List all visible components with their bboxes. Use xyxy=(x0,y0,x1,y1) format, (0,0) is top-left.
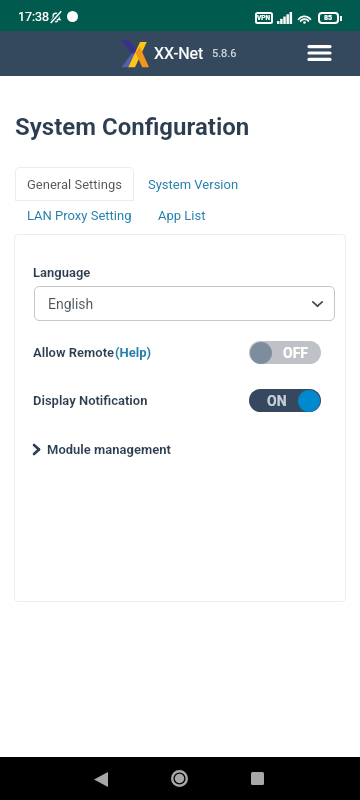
staticText: General Settings xyxy=(27,177,122,192)
staticText: Language xyxy=(33,265,91,280)
button[interactable]: Home xyxy=(157,757,202,800)
button[interactable]: Recent apps xyxy=(235,757,280,800)
button[interactable]: Module management xyxy=(33,438,171,460)
staticText: XX-Net xyxy=(154,44,204,63)
staticText: OFF xyxy=(283,345,309,361)
button[interactable]: System Version xyxy=(134,167,253,201)
button[interactable]: Allow remote off xyxy=(249,341,321,364)
staticText: 5.8.6 xyxy=(212,47,237,60)
staticText: 17:38 xyxy=(18,9,50,24)
button[interactable]: (Help) xyxy=(115,345,152,360)
button[interactable]: Back xyxy=(78,757,123,800)
button[interactable]: App List xyxy=(144,202,220,228)
button[interactable]: Display notification on xyxy=(249,389,321,412)
staticText: English xyxy=(48,296,94,312)
staticText: Module management xyxy=(47,442,171,457)
staticText: 85 xyxy=(324,14,333,22)
staticText: App List xyxy=(158,208,206,223)
staticText: VPN xyxy=(257,14,271,22)
staticText: Display Notification xyxy=(33,393,148,408)
button[interactable]: General Settings xyxy=(15,167,134,201)
staticText: System Version xyxy=(148,177,239,192)
button[interactable]: LAN Proxy Setting xyxy=(15,202,144,228)
button[interactable]: Language selector xyxy=(34,286,335,321)
button[interactable]: Open menu xyxy=(302,36,336,70)
staticText: Allow Remote xyxy=(33,345,115,360)
staticText: ON xyxy=(267,393,287,409)
staticText: LAN Proxy Setting xyxy=(27,208,132,223)
staticText: System Configuration xyxy=(15,113,250,141)
